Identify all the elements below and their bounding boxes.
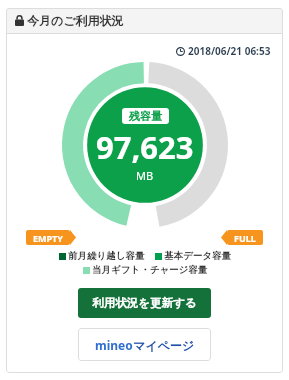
staticText: 2018/06/21 06:53 (188, 44, 271, 58)
button[interactable]: mineo (78, 328, 211, 361)
staticText: MB (136, 168, 154, 183)
staticText: 基本データ容量 (164, 250, 231, 262)
staticText: 利用状況を更新する (92, 296, 197, 310)
staticText: マイページ (133, 338, 195, 353)
staticText: 今月のご利用状況 (27, 13, 124, 28)
staticText: mineo (95, 337, 133, 353)
staticText: 前月繰り越し容量 (68, 250, 145, 262)
staticText: 当月ギフト・チャージ容量 (92, 264, 208, 276)
staticText: EMPTY (33, 232, 63, 244)
button[interactable]: 利用状況を更新する (78, 288, 211, 318)
staticText: 97,623 (96, 126, 194, 168)
staticText: 残容量 (129, 109, 162, 123)
staticText: FULL (234, 232, 256, 244)
